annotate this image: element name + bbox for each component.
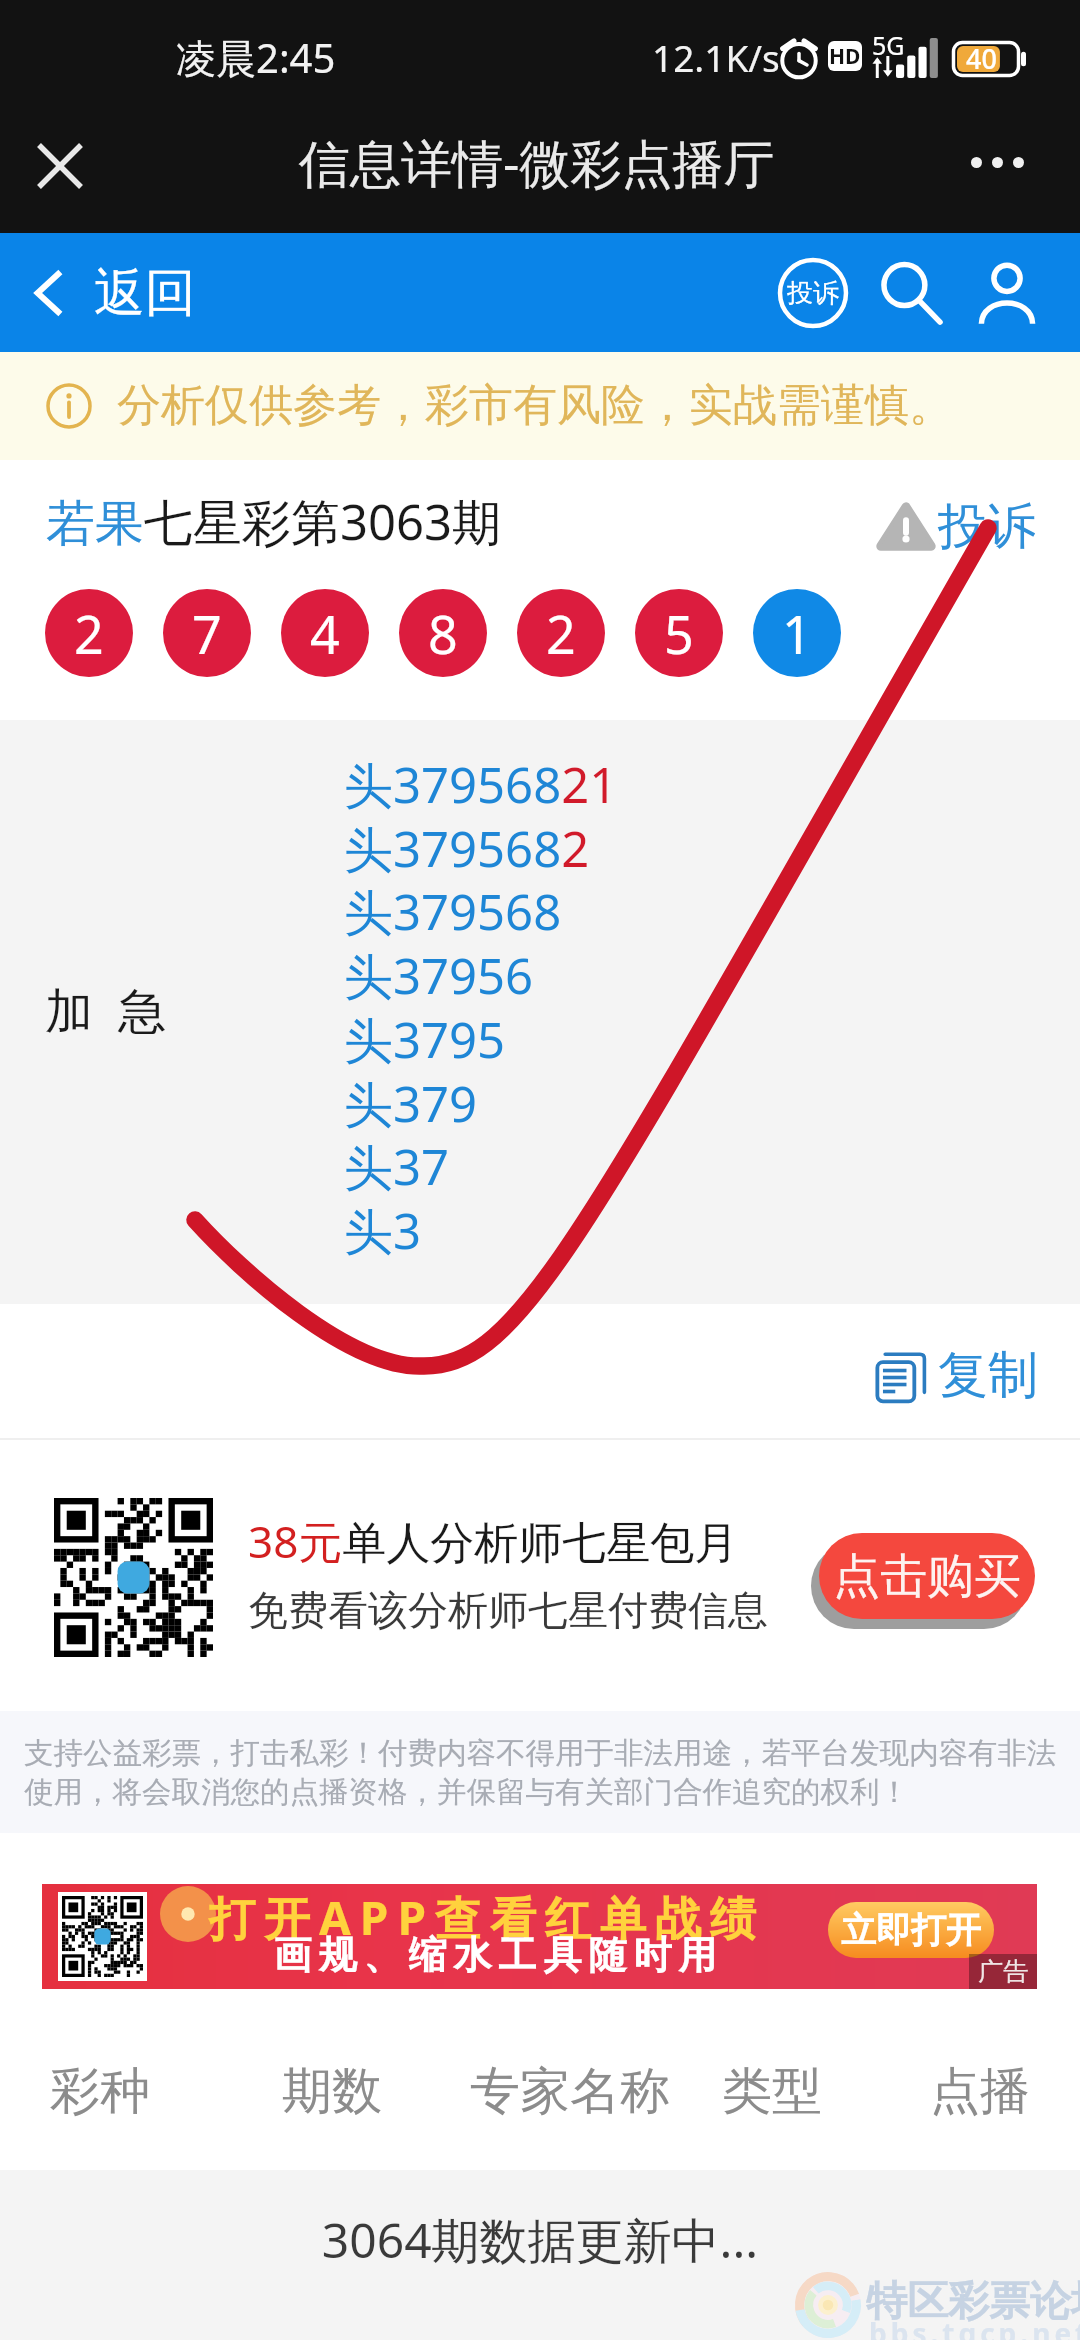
staticText: 2 — [74, 598, 104, 669]
button[interactable]: Profile — [971, 257, 1043, 329]
staticText: 40 — [966, 40, 997, 77]
button[interactable]: 复制 — [874, 1332, 1038, 1418]
staticText: 4 — [310, 598, 340, 669]
staticText: 38元单人分析师七星包月 — [248, 1511, 739, 1571]
staticText: 头37956 — [344, 942, 534, 1009]
button[interactable]: Advertisement banner — [42, 1884, 1037, 1989]
staticText: 1 — [782, 598, 812, 669]
staticText: 信息详情-微彩点播厅 — [299, 127, 775, 197]
staticText: 免费看该分析师七星付费信息 — [248, 1585, 768, 1635]
staticText: 返回 — [94, 261, 196, 325]
staticText: 8 — [428, 598, 458, 669]
staticText: 分析仅供参考，彩市有风险，实战需谨慎。 — [117, 378, 953, 433]
staticText: 5G — [872, 28, 905, 62]
staticText: 特区彩票论坛 — [866, 2276, 1080, 2328]
button[interactable]: Search — [875, 257, 947, 329]
button[interactable]: Close — [6, 113, 114, 233]
staticText: 专家名称 — [470, 2060, 670, 2123]
staticText: 画规、缩水工具随时用 — [270, 1931, 720, 1979]
staticText: 类型 — [722, 2060, 822, 2123]
staticText: 7 — [192, 598, 222, 669]
staticText: 加 急 — [45, 977, 166, 1043]
staticText: 点播 — [930, 2060, 1030, 2123]
staticText: 点击购买 — [833, 1547, 1021, 1606]
staticText: 头3 — [344, 1197, 422, 1264]
button[interactable]: More options — [940, 113, 1052, 233]
button[interactable]: 返回 — [34, 245, 196, 341]
button[interactable]: 投诉 — [777, 257, 849, 329]
staticText: 复制 — [938, 1344, 1038, 1407]
staticText: bbs.tqcp.net — [869, 2314, 1080, 2340]
staticText: 广告 — [978, 1956, 1028, 1987]
staticText: 头379 — [344, 1070, 478, 1137]
staticText: 若果七星彩第3063期 — [46, 488, 502, 555]
staticText: 投诉 — [787, 277, 839, 310]
staticText: 投诉 — [938, 496, 1036, 558]
staticText: 期数 — [282, 2060, 382, 2123]
staticText: 头37956821 — [344, 751, 618, 818]
staticText: 头3795 — [344, 1006, 506, 1073]
button[interactable]: 点击购买 — [819, 1533, 1035, 1619]
staticText: 5 — [664, 598, 694, 669]
staticText: 凌晨2:45 — [176, 30, 336, 85]
staticText: 头3795682 — [344, 815, 590, 882]
staticText: 立即打开 — [841, 1908, 981, 1952]
staticText: 打开APP查看红单战绩 — [209, 1886, 765, 1949]
staticText: 12.1K/s — [652, 32, 780, 82]
staticText: 头379568 — [344, 878, 562, 945]
staticText: 支持公益彩票，打击私彩！付费内容不得用于非法用途，若平台发现内容有非法使用，将会… — [24, 1735, 1072, 1811]
staticText: 2 — [546, 598, 576, 669]
button[interactable]: 投诉 — [872, 496, 1036, 558]
staticText: 头37 — [344, 1133, 450, 1200]
staticText: 3064期数据更新中... — [0, 2207, 1080, 2273]
staticText: 彩种 — [50, 2060, 150, 2123]
staticText: HD — [829, 42, 861, 71]
